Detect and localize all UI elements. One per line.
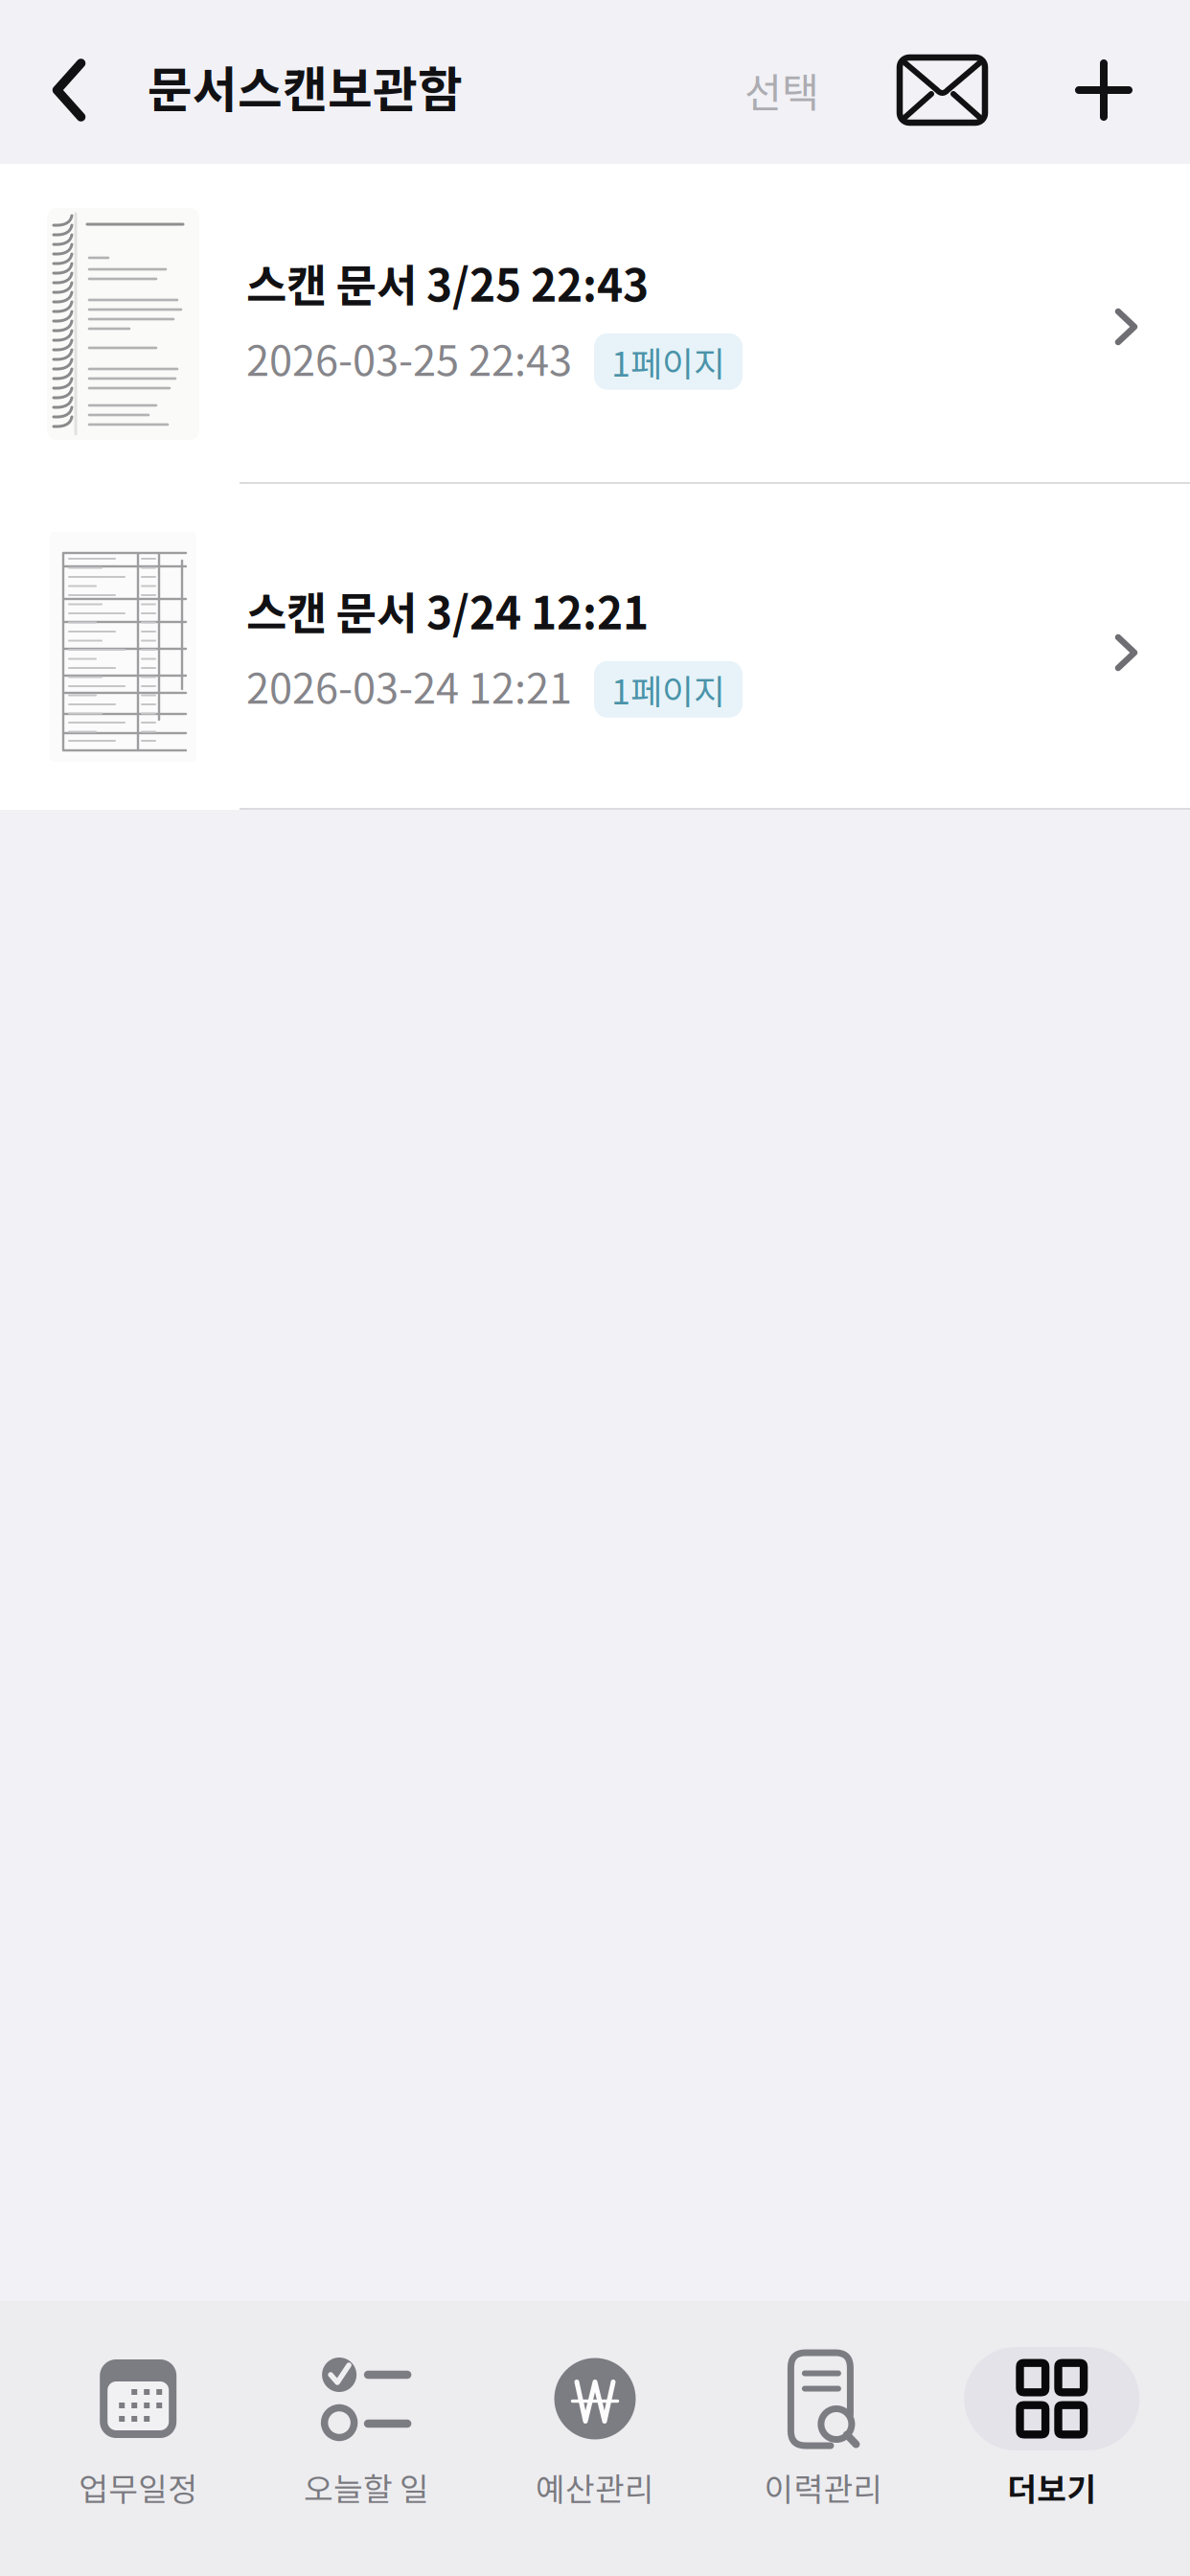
staticText: 더보기 (1007, 2464, 1096, 2510)
button[interactable]: 메일 (882, 31, 1002, 149)
staticText: 2026-03-24 12:21 (246, 655, 572, 715)
button[interactable]: 추가 (1047, 31, 1160, 149)
staticText: 업무일정 (79, 2464, 198, 2510)
staticText: 예산관리 (536, 2464, 654, 2510)
staticText: 오늘할 일 (304, 2464, 429, 2510)
button[interactable]: 스캔 문서 3/25 22:43 (0, 164, 1190, 484)
button[interactable]: 더보기 (938, 2301, 1166, 2576)
staticText: 1페이지 (611, 664, 725, 714)
staticText: 이력관리 (764, 2464, 883, 2510)
button[interactable]: 이력관리 (709, 2301, 938, 2576)
button[interactable]: 문서스캔보관함 (148, 27, 463, 146)
staticText: 2026-03-25 22:43 (246, 328, 572, 388)
button[interactable]: 뒤로 (19, 31, 119, 149)
staticText: 스캔 문서 3/24 12:21 (246, 578, 649, 642)
button[interactable]: 선택 (726, 31, 837, 149)
button[interactable]: 스캔 문서 3/24 12:21 (0, 484, 1190, 810)
button[interactable]: 업무일정 (24, 2301, 252, 2576)
staticText: 1페이지 (611, 337, 725, 386)
staticText: 선택 (744, 60, 819, 120)
button[interactable]: 오늘할 일 (252, 2301, 481, 2576)
staticText: 스캔 문서 3/25 22:43 (246, 250, 649, 314)
staticText: 문서스캔보관함 (148, 51, 463, 121)
button[interactable]: 예산관리 (481, 2301, 709, 2576)
